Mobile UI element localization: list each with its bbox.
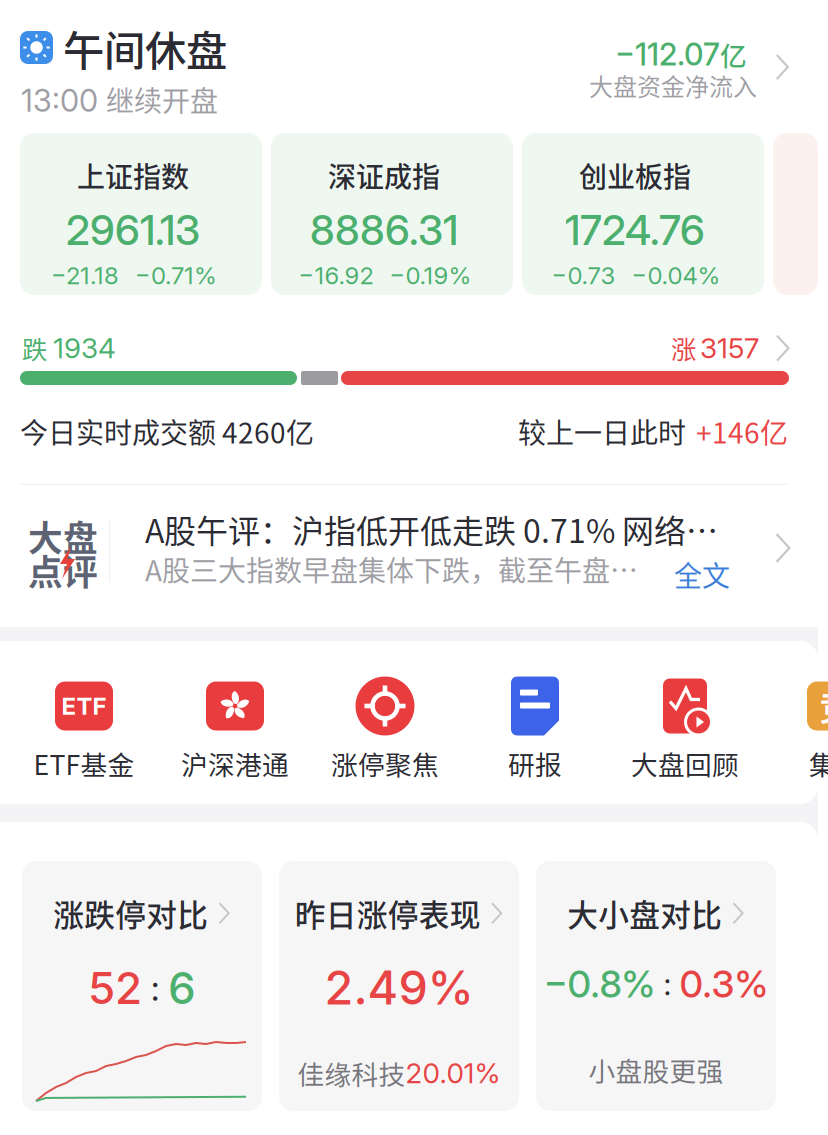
staticText: 大 bbox=[28, 511, 63, 561]
staticText: 涨跌停对比 bbox=[53, 891, 208, 935]
staticText: 0.3% bbox=[679, 961, 768, 1007]
staticText: 大盘回顾 bbox=[631, 744, 739, 783]
button[interactable]: 涨跌停对比 bbox=[22, 861, 262, 1111]
staticText: : bbox=[142, 967, 168, 1009]
button[interactable]: 研报 bbox=[460, 676, 610, 786]
staticText: +146亿 bbox=[696, 411, 788, 451]
staticText: A股三大指数早盘集体下跌，截至午盘… bbox=[145, 549, 638, 589]
staticText: −0.19% bbox=[389, 261, 471, 290]
button[interactable]: ETF bbox=[9, 676, 159, 786]
staticText: −0.8% bbox=[543, 961, 655, 1007]
staticText: 今日实时成交额 4260亿 bbox=[20, 411, 314, 451]
staticText: 亿 bbox=[720, 35, 747, 74]
staticText: 竞 bbox=[819, 682, 828, 730]
staticText: 8886.31 bbox=[310, 205, 458, 255]
button[interactable]: 创业板指 bbox=[522, 133, 764, 295]
staticText: : bbox=[655, 965, 679, 1002]
staticText: 佳缘科技 bbox=[297, 1054, 405, 1092]
staticText: ETF基金 bbox=[33, 744, 134, 783]
staticText: 13:00 bbox=[21, 82, 98, 119]
staticText: 52 bbox=[88, 961, 142, 1015]
staticText: 点 bbox=[28, 545, 63, 595]
staticText: 2961.13 bbox=[66, 205, 200, 255]
staticText: −0.04% bbox=[631, 261, 720, 290]
staticText: 2.49% bbox=[324, 959, 473, 1016]
button[interactable]: 大小盘对比 bbox=[536, 861, 776, 1111]
staticText: 深证成指 bbox=[328, 155, 440, 195]
staticText: 研报 bbox=[508, 744, 562, 783]
staticText: 1724.76 bbox=[565, 205, 705, 255]
staticText: 集合 bbox=[809, 744, 828, 783]
staticText: 评 bbox=[63, 545, 98, 595]
staticText: 盘 bbox=[63, 511, 98, 561]
staticText: 创业板指 bbox=[579, 155, 691, 195]
button[interactable]: 上证指数 bbox=[20, 133, 262, 295]
staticText: 昨日涨停表现 bbox=[295, 891, 481, 935]
staticText: −21.18 bbox=[51, 261, 119, 290]
staticText: −0.71% bbox=[135, 261, 217, 290]
staticText: −112.07 bbox=[615, 36, 720, 73]
staticText: 午间休盘 bbox=[63, 18, 227, 78]
staticText: 小盘股更强 bbox=[588, 1051, 723, 1089]
button[interactable]: 沪深港通 bbox=[160, 676, 310, 786]
staticText: 20.01% bbox=[405, 1056, 500, 1090]
staticText: 1934 bbox=[53, 331, 116, 365]
staticText: 继续开盘 bbox=[106, 79, 218, 119]
staticText: A股午评：沪指低开低走跌 0.71% 网络… bbox=[145, 506, 718, 552]
staticText: 全文 bbox=[674, 554, 730, 594]
staticText: 上证指数 bbox=[77, 155, 189, 195]
staticText: −0.73 bbox=[551, 261, 615, 290]
staticText: 涨 bbox=[671, 330, 696, 366]
button[interactable]: 昨日涨停表现 bbox=[279, 861, 519, 1111]
staticText: 大盘资金净流入 bbox=[589, 68, 757, 103]
button[interactable]: 涨停聚焦 bbox=[310, 676, 460, 786]
staticText: 较上一日此时 bbox=[518, 411, 686, 451]
button[interactable]: 跌 bbox=[21, 334, 789, 364]
staticText: 涨停聚焦 bbox=[331, 744, 439, 783]
button[interactable]: 深证成指 bbox=[271, 133, 513, 295]
button[interactable]: 大 bbox=[20, 500, 818, 600]
staticText: 3157 bbox=[700, 331, 759, 365]
staticText: 跌 bbox=[22, 330, 47, 366]
staticText: ETF bbox=[61, 691, 106, 720]
staticText: 6 bbox=[168, 961, 196, 1015]
button[interactable]: 大盘回顾 bbox=[610, 676, 760, 786]
staticText: −16.92 bbox=[298, 261, 373, 290]
button[interactable]: −112.07 bbox=[587, 33, 799, 109]
button[interactable]: 竞 bbox=[761, 676, 828, 786]
staticText: 大小盘对比 bbox=[567, 891, 722, 935]
staticText: 沪深港通 bbox=[181, 744, 289, 783]
